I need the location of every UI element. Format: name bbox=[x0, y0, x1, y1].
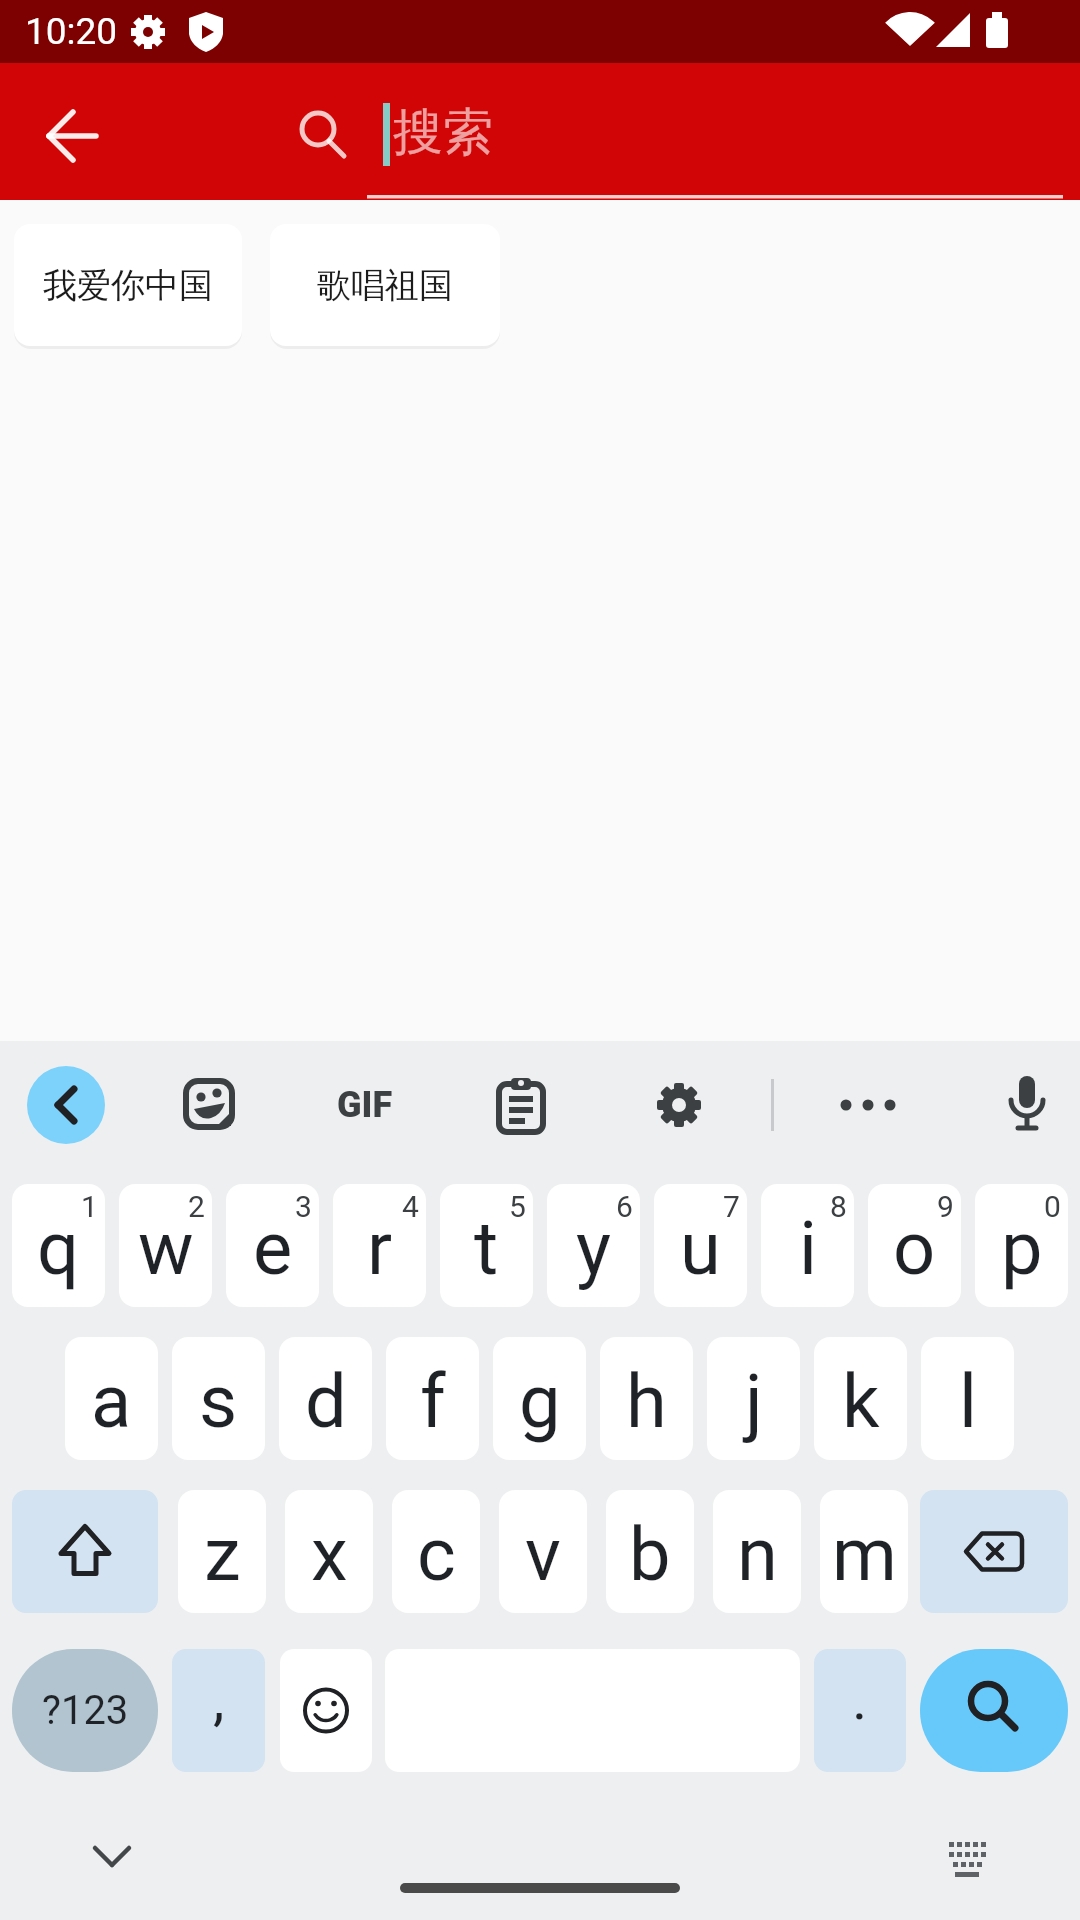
button[interactable]: u bbox=[654, 1184, 747, 1307]
button[interactable] bbox=[24, 88, 120, 184]
button[interactable]: r bbox=[333, 1184, 426, 1307]
button[interactable]: f bbox=[386, 1337, 479, 1460]
button[interactable]: a bbox=[65, 1337, 158, 1460]
button[interactable]: e bbox=[226, 1184, 319, 1307]
button[interactable]: s bbox=[172, 1337, 265, 1460]
button[interactable]: l bbox=[921, 1337, 1014, 1460]
button[interactable] bbox=[1000, 1074, 1054, 1136]
staticText: 5 bbox=[509, 1189, 526, 1224]
button[interactable] bbox=[822, 1081, 914, 1129]
button[interactable]: i bbox=[761, 1184, 854, 1307]
staticText: m bbox=[832, 1511, 897, 1598]
staticText: t bbox=[474, 1205, 499, 1292]
staticText: s bbox=[199, 1358, 238, 1445]
button[interactable]: g bbox=[493, 1337, 586, 1460]
staticText: . bbox=[852, 1665, 868, 1733]
staticText: w bbox=[138, 1205, 194, 1292]
staticText: 我爱你中国 bbox=[43, 264, 213, 307]
staticText: r bbox=[367, 1205, 393, 1292]
staticText: p bbox=[1001, 1205, 1043, 1292]
staticText: g bbox=[519, 1358, 561, 1445]
staticText: j bbox=[745, 1358, 763, 1445]
button[interactable]: q bbox=[12, 1184, 105, 1307]
staticText: 2 bbox=[188, 1189, 205, 1224]
staticText: 4 bbox=[402, 1189, 419, 1224]
staticText: 10:20 bbox=[25, 10, 118, 53]
staticText: 7 bbox=[723, 1189, 740, 1224]
button[interactable]: b bbox=[606, 1490, 694, 1613]
button[interactable] bbox=[12, 1490, 158, 1613]
button[interactable]: ?123 bbox=[12, 1649, 158, 1772]
button[interactable]: x bbox=[285, 1490, 373, 1613]
button[interactable]: m bbox=[820, 1490, 908, 1613]
staticText: a bbox=[91, 1358, 132, 1445]
staticText: f bbox=[420, 1358, 446, 1445]
button[interactable] bbox=[652, 1078, 706, 1132]
staticText: o bbox=[893, 1205, 936, 1292]
button[interactable] bbox=[76, 1824, 148, 1888]
staticText: ?123 bbox=[42, 1687, 129, 1734]
button[interactable]: p bbox=[975, 1184, 1068, 1307]
staticText: c bbox=[417, 1511, 456, 1598]
button[interactable] bbox=[183, 1078, 235, 1130]
staticText: e bbox=[253, 1205, 293, 1292]
button[interactable]: v bbox=[499, 1490, 587, 1613]
staticText: 搜索 bbox=[393, 101, 493, 164]
button[interactable]: y bbox=[547, 1184, 640, 1307]
button[interactable]: 搜索 bbox=[367, 83, 1063, 183]
staticText: h bbox=[626, 1358, 667, 1445]
staticText: 6 bbox=[616, 1189, 633, 1224]
staticText: GIF bbox=[337, 1084, 393, 1126]
button[interactable]: h bbox=[600, 1337, 693, 1460]
staticText: d bbox=[305, 1358, 347, 1445]
button[interactable] bbox=[920, 1649, 1068, 1772]
button[interactable] bbox=[27, 1066, 105, 1144]
button[interactable]: 歌唱祖国 bbox=[270, 224, 500, 346]
button[interactable]: c bbox=[392, 1490, 480, 1613]
staticText: q bbox=[37, 1205, 80, 1292]
staticText: x bbox=[311, 1511, 348, 1598]
staticText: z bbox=[204, 1511, 241, 1598]
button[interactable]: w bbox=[119, 1184, 212, 1307]
staticText: 3 bbox=[295, 1189, 312, 1224]
button[interactable]: k bbox=[814, 1337, 907, 1460]
button[interactable]: o bbox=[868, 1184, 961, 1307]
button[interactable] bbox=[280, 1649, 372, 1772]
staticText: y bbox=[576, 1205, 612, 1292]
button[interactable]: GIF bbox=[330, 1080, 400, 1130]
staticText: u bbox=[680, 1205, 721, 1292]
staticText: 0 bbox=[1044, 1189, 1061, 1224]
button[interactable]: , bbox=[172, 1649, 265, 1772]
staticText: i bbox=[799, 1205, 817, 1292]
button[interactable]: . bbox=[814, 1649, 906, 1772]
button[interactable]: z bbox=[178, 1490, 266, 1613]
button[interactable] bbox=[936, 1828, 998, 1884]
staticText: 1 bbox=[81, 1189, 98, 1224]
staticText: l bbox=[959, 1358, 977, 1445]
staticText: k bbox=[842, 1358, 880, 1445]
staticText: 歌唱祖国 bbox=[317, 264, 453, 307]
button[interactable]: d bbox=[279, 1337, 372, 1460]
button[interactable]: j bbox=[707, 1337, 800, 1460]
button[interactable] bbox=[496, 1077, 546, 1135]
staticText: 9 bbox=[937, 1189, 954, 1224]
button[interactable] bbox=[920, 1490, 1068, 1613]
button[interactable]: t bbox=[440, 1184, 533, 1307]
button[interactable]: n bbox=[713, 1490, 801, 1613]
staticText: , bbox=[213, 1665, 225, 1733]
staticText: 8 bbox=[830, 1189, 847, 1224]
staticText: n bbox=[737, 1511, 778, 1598]
staticText: v bbox=[525, 1511, 561, 1598]
button[interactable]: 我爱你中国 bbox=[14, 224, 242, 346]
staticText: b bbox=[629, 1511, 671, 1598]
